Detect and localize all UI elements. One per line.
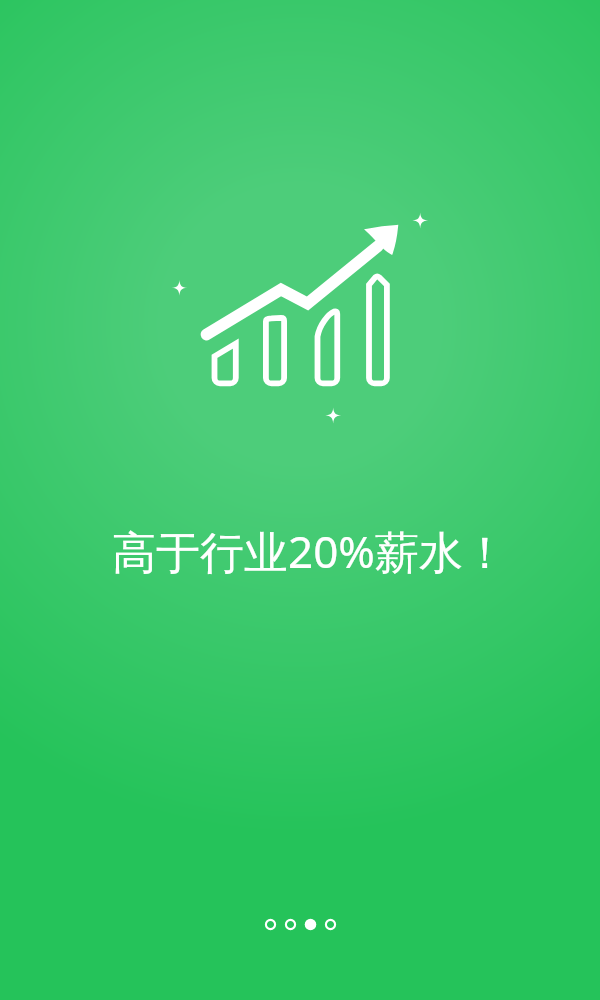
button[interactable]: Page 2 xyxy=(284,918,297,931)
staticText: 高于行业20%薪水！ xyxy=(112,521,507,581)
button[interactable]: Page 1 xyxy=(264,918,277,931)
button[interactable]: Page 4 xyxy=(324,918,337,931)
button[interactable]: Page 3 xyxy=(304,918,317,931)
